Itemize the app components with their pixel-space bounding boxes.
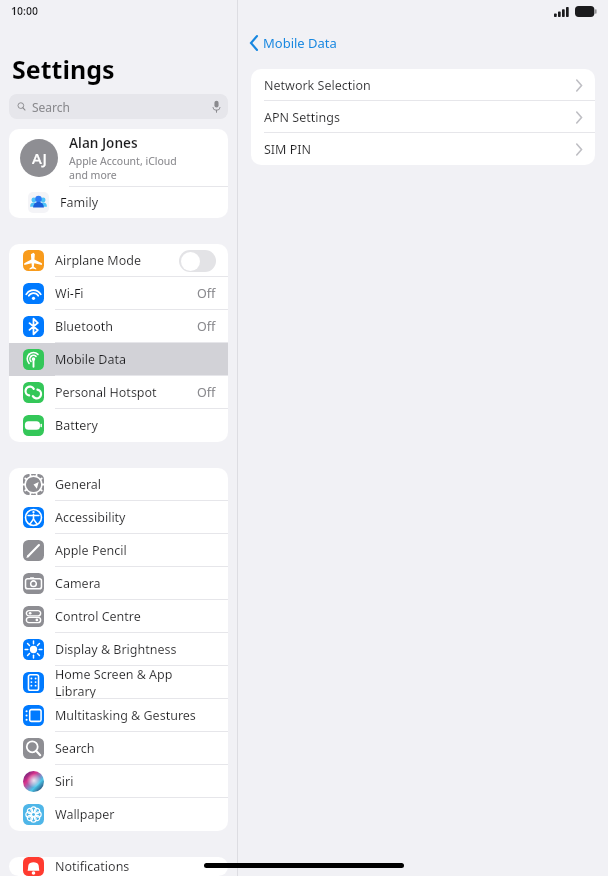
staticText: Home Screen & App Library <box>55 666 216 699</box>
button[interactable]: Mobile Data <box>9 343 228 376</box>
staticText: Family <box>60 194 99 211</box>
button[interactable]: Camera <box>9 567 228 600</box>
staticText: and more <box>69 168 117 182</box>
button[interactable]: AJ <box>9 129 228 187</box>
staticText: General <box>55 476 102 493</box>
button[interactable]: Apple Pencil <box>9 534 228 567</box>
button[interactable]: Search <box>9 94 228 119</box>
staticText: Camera <box>55 575 101 592</box>
staticText: Wallpaper <box>55 806 115 823</box>
button[interactable]: Family <box>9 187 228 218</box>
button[interactable]: General <box>9 468 228 501</box>
button[interactable]: Multitasking & Gestures <box>9 699 228 732</box>
button[interactable]: Bluetooth <box>9 310 228 343</box>
staticText: Apple Pencil <box>55 542 127 559</box>
button[interactable]: Airplane Mode <box>9 244 228 277</box>
staticText: Notifications <box>55 858 130 875</box>
button[interactable]: Accessibility <box>9 501 228 534</box>
staticText: Personal Hotspot <box>55 384 157 401</box>
staticText: Wi-Fi <box>55 285 84 302</box>
staticText: Airplane Mode <box>55 252 141 269</box>
staticText: Search <box>55 740 95 757</box>
staticText: Apple Account, iCloud <box>69 154 177 168</box>
button[interactable]: Mobile Data <box>246 29 341 57</box>
staticText: Mobile Data <box>263 34 337 52</box>
staticText: Off <box>197 318 216 335</box>
button[interactable]: Home Screen & App Library <box>9 666 228 699</box>
staticText: Alan Jones <box>69 134 138 152</box>
button[interactable]: Notifications <box>9 857 228 876</box>
staticText: APN Settings <box>264 109 340 126</box>
staticText: Accessibility <box>55 509 126 526</box>
button[interactable]: Battery <box>9 409 228 442</box>
button[interactable]: Search <box>9 732 228 765</box>
button[interactable]: Siri <box>9 765 228 798</box>
staticText: Control Centre <box>55 608 141 625</box>
button[interactable]: Wallpaper <box>9 798 228 831</box>
button[interactable]: Network Selection <box>251 69 595 101</box>
button[interactable]: Personal Hotspot <box>9 376 228 409</box>
staticText: Bluetooth <box>55 318 114 335</box>
staticText: Network Selection <box>264 77 371 94</box>
staticText: Off <box>197 384 216 401</box>
button[interactable]: Airplane Mode toggle <box>179 250 216 272</box>
staticText: Display & Brightness <box>55 641 177 658</box>
staticText: Off <box>197 285 216 302</box>
staticText: 10:00 <box>11 4 38 18</box>
staticText: Battery <box>55 417 98 434</box>
staticText: SIM PIN <box>264 141 311 158</box>
button[interactable]: SIM PIN <box>251 133 595 165</box>
staticText: Siri <box>55 773 74 790</box>
button[interactable]: Display & Brightness <box>9 633 228 666</box>
staticText: AJ <box>32 148 47 168</box>
staticText: Search <box>32 99 70 115</box>
other: Voice search <box>212 100 221 113</box>
staticText: Multitasking & Gestures <box>55 707 196 724</box>
button[interactable]: APN Settings <box>251 101 595 133</box>
button[interactable]: Wi-Fi <box>9 277 228 310</box>
button[interactable]: Control Centre <box>9 600 228 633</box>
staticText: Mobile Data <box>55 351 127 368</box>
staticText: Settings <box>12 52 115 86</box>
